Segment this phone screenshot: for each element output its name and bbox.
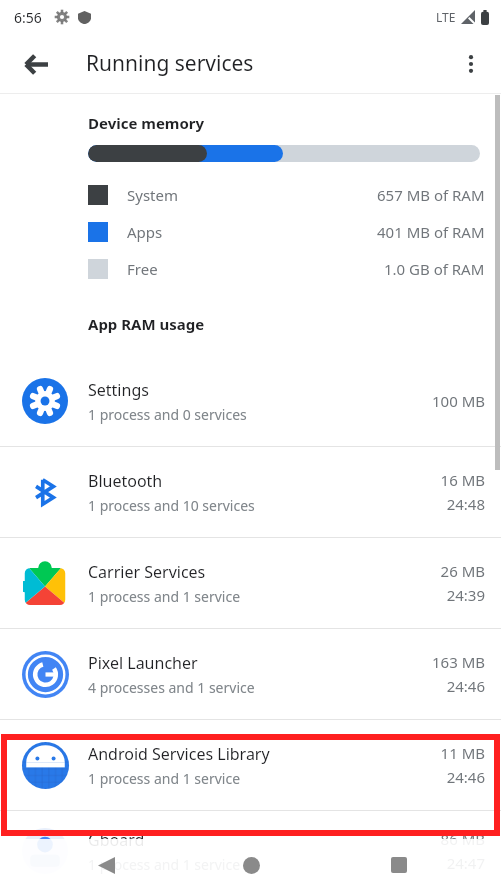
staticText: 163 MB — [432, 652, 485, 672]
button[interactable]: Carrier Services — [0, 538, 501, 628]
button[interactable]: Settings — [0, 356, 501, 446]
staticText: Settings — [88, 379, 149, 401]
staticText: 16 MB — [440, 470, 485, 490]
staticText: Device memory — [88, 113, 205, 133]
button[interactable]: Recents — [377, 843, 421, 887]
staticText: 1.0 GB of RAM — [384, 259, 485, 279]
staticText: Apps — [127, 222, 163, 242]
staticText: Bluetooth — [88, 470, 163, 492]
staticText: 24:47 — [446, 853, 485, 873]
staticText: 24:46 — [446, 767, 485, 787]
staticText: 1 process and 1 service — [88, 587, 241, 606]
staticText: 86 MB — [440, 829, 485, 849]
staticText: 100 MB — [432, 391, 485, 411]
staticText: Free — [127, 259, 158, 279]
staticText: 1 process and 0 services — [88, 405, 247, 424]
staticText: Running services — [86, 49, 254, 78]
staticText: 657 MB of RAM — [377, 185, 485, 205]
staticText: Pixel Launcher — [88, 652, 198, 674]
staticText: 1 process and 1 service — [88, 855, 241, 874]
staticText: LTE — [436, 9, 456, 25]
button[interactable]: More options — [449, 42, 493, 86]
button[interactable]: Home — [229, 843, 273, 887]
button[interactable]: Gboard — [0, 811, 501, 891]
staticText: 11 MB — [440, 743, 485, 763]
staticText: 24:46 — [446, 676, 485, 696]
button[interactable]: Back — [84, 843, 128, 887]
staticText: System — [127, 185, 178, 205]
button[interactable]: Pixel Launcher — [0, 629, 501, 719]
staticText: 401 MB of RAM — [377, 222, 485, 242]
staticText: 6:56 — [14, 8, 42, 27]
staticText: App RAM usage — [88, 314, 205, 334]
staticText: 1 process and 10 services — [88, 496, 255, 515]
staticText: Android Services Library — [88, 743, 270, 765]
staticText: 4 processes and 1 service — [88, 678, 255, 697]
button[interactable]: Bluetooth — [0, 447, 501, 537]
staticText: 24:48 — [446, 494, 485, 514]
staticText: 26 MB — [440, 561, 485, 581]
staticText: Gboard — [88, 829, 145, 851]
staticText: Carrier Services — [88, 561, 206, 583]
staticText: 24:39 — [446, 585, 485, 605]
button[interactable]: Android Services Library — [0, 720, 501, 810]
staticText: 1 process and 1 service — [88, 769, 241, 788]
button[interactable]: Back — [14, 42, 58, 86]
